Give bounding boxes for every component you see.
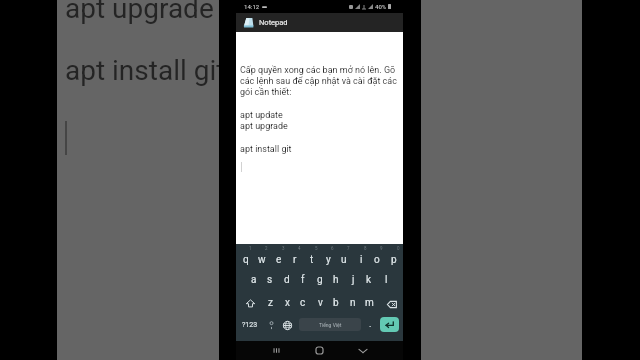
staticText: o xyxy=(374,254,380,266)
staticText: u xyxy=(341,254,347,266)
button[interactable]: Change keyboard language xyxy=(279,314,295,336)
button[interactable]: j xyxy=(345,269,361,291)
button[interactable]: m xyxy=(361,292,377,314)
other: Notepad app icon xyxy=(242,16,255,29)
staticText: 7 xyxy=(347,246,350,251)
button[interactable]: Home xyxy=(307,341,331,360)
button[interactable]: Shift xyxy=(240,292,260,314)
button[interactable]: f xyxy=(295,269,311,291)
staticText: p xyxy=(391,254,397,266)
staticText: 40% xyxy=(375,3,387,10)
staticText: g xyxy=(317,274,323,286)
staticText: 2 xyxy=(265,246,268,251)
staticText: Cấp quyền xong các bạn mở nó lên. Gõ xyxy=(240,65,396,76)
button[interactable]: Cấp quyền xong các bạn mở nó lên. Gõ xyxy=(236,32,403,244)
staticText: 3 xyxy=(282,246,285,251)
staticText: s xyxy=(267,274,273,286)
staticText: m xyxy=(365,297,374,309)
staticText: Notepad xyxy=(259,18,288,27)
button[interactable]: r xyxy=(287,246,303,268)
staticText: n xyxy=(350,297,356,309)
staticText: 0 xyxy=(397,246,400,251)
staticText: apt install git xyxy=(65,54,226,87)
staticText: r xyxy=(293,254,297,266)
staticText: c xyxy=(300,297,306,309)
staticText: x xyxy=(285,297,290,309)
button[interactable]: l xyxy=(378,269,394,291)
button[interactable]: t xyxy=(304,246,320,268)
staticText: v xyxy=(318,297,323,309)
button[interactable]: Back xyxy=(351,341,375,360)
staticText: l xyxy=(385,274,388,286)
staticText: 1 xyxy=(249,246,252,251)
button[interactable]: u xyxy=(336,246,352,268)
staticText: apt install git xyxy=(240,144,292,155)
staticText: 8 xyxy=(364,246,367,251)
staticText: 5 xyxy=(315,246,318,251)
button[interactable]: w xyxy=(254,246,270,268)
staticText: a xyxy=(251,274,257,286)
button[interactable]: Notepad app icon xyxy=(236,13,403,32)
staticText: apt update xyxy=(240,110,283,121)
staticText: z xyxy=(268,297,273,309)
staticText: d xyxy=(284,274,290,286)
staticText: q xyxy=(243,254,249,266)
button[interactable]: Recent apps xyxy=(264,341,288,360)
staticText: 9 xyxy=(380,246,383,251)
button[interactable]: d xyxy=(279,269,295,291)
button[interactable]: e xyxy=(271,246,287,268)
staticText: j xyxy=(352,274,355,286)
staticText: y xyxy=(326,254,331,266)
button[interactable]: s xyxy=(262,269,278,291)
button[interactable]: q xyxy=(238,246,254,268)
staticText: . xyxy=(369,319,372,330)
button[interactable]: Voice input xyxy=(264,314,278,336)
button[interactable]: x xyxy=(279,292,295,314)
staticText: các lệnh sau để cập nhật và cài đặt các xyxy=(240,76,397,87)
staticText: i xyxy=(360,254,363,266)
button[interactable]: v xyxy=(312,292,328,314)
button[interactable]: h xyxy=(328,269,344,291)
button[interactable]: b xyxy=(328,292,344,314)
button[interactable]: n xyxy=(345,292,361,314)
staticText: h xyxy=(333,274,339,286)
staticText: 14:12 xyxy=(244,3,260,10)
staticText: 4 xyxy=(298,246,301,251)
staticText: b xyxy=(333,297,339,309)
staticText: apt upgrade xyxy=(65,0,214,25)
staticText: apt upgrade xyxy=(240,121,288,132)
staticText: f xyxy=(301,274,305,286)
button[interactable]: a xyxy=(246,269,262,291)
staticText: gói cần thiết: xyxy=(240,87,292,98)
staticText: k xyxy=(366,274,372,286)
button[interactable]: c xyxy=(295,292,311,314)
button[interactable]: i xyxy=(353,246,369,268)
button[interactable]: ?123 xyxy=(239,314,261,336)
button[interactable]: Tiếng Việt xyxy=(299,318,361,331)
button[interactable]: p xyxy=(386,246,402,268)
button[interactable]: k xyxy=(361,269,377,291)
button[interactable]: y xyxy=(320,246,336,268)
staticText: e xyxy=(276,254,282,266)
staticText: t xyxy=(310,254,314,266)
staticText: 6 xyxy=(331,246,334,251)
staticText: w xyxy=(258,254,266,266)
button[interactable]: z xyxy=(262,292,278,314)
staticText: Tiếng Việt xyxy=(319,322,342,328)
button[interactable]: . xyxy=(364,314,376,336)
button[interactable]: Backspace xyxy=(382,293,402,315)
button[interactable]: g xyxy=(312,269,328,291)
staticText: ?123 xyxy=(242,321,258,329)
button[interactable]: o xyxy=(369,246,385,268)
button[interactable]: Enter xyxy=(380,317,399,332)
